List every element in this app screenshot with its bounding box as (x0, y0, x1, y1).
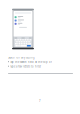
staticText: Search for any setting (8, 56, 35, 59)
staticText: Tap the search field at the top of (10, 60, 52, 64)
button[interactable] (13, 22, 33, 25)
staticText: Type a few letters to filter (10, 65, 41, 68)
button[interactable] (13, 15, 33, 19)
staticText: 7 (39, 99, 41, 103)
button[interactable] (13, 19, 33, 22)
